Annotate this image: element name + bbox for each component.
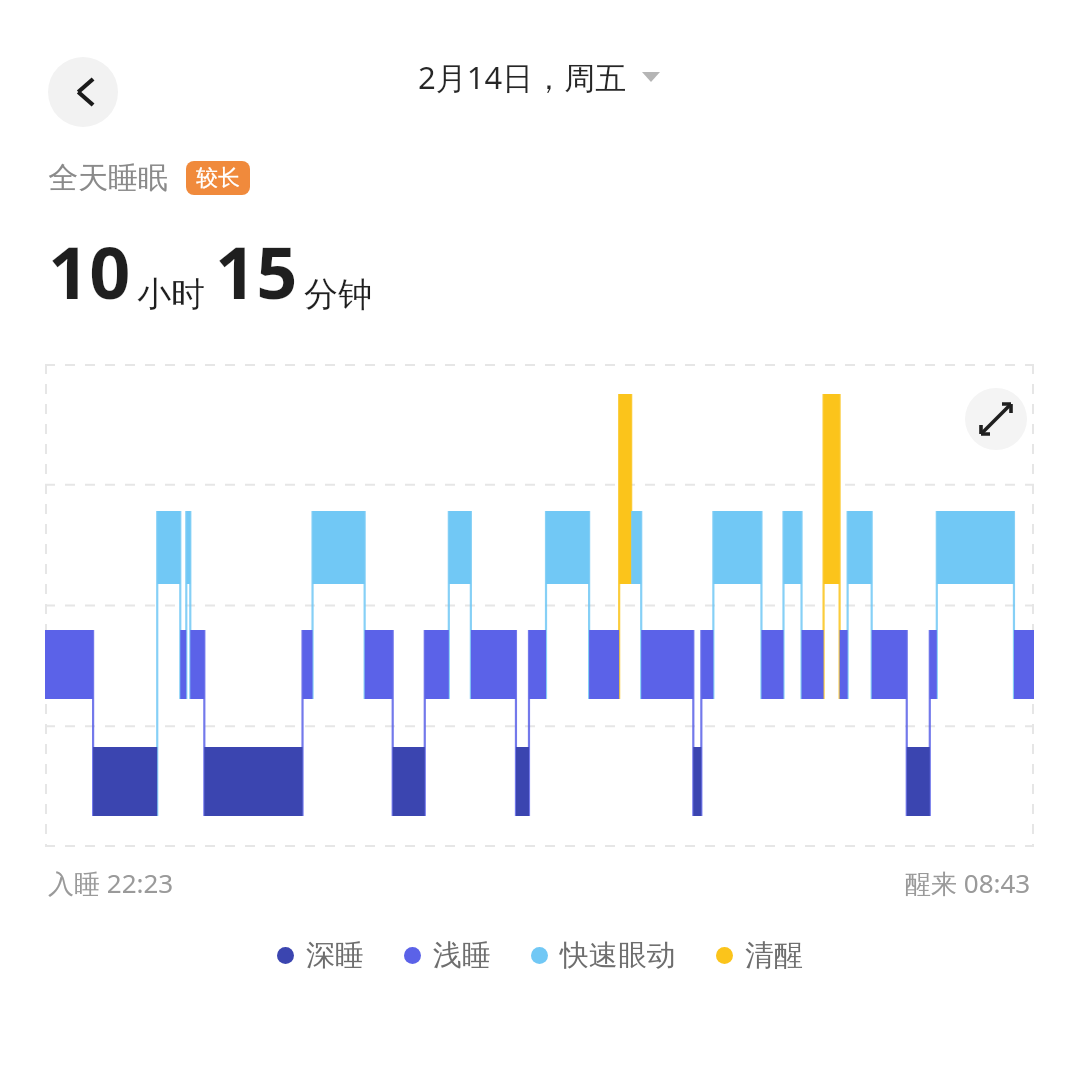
button[interactable]: 2月14日，周五 bbox=[418, 56, 661, 98]
button[interactable]: 清醒 bbox=[716, 937, 803, 974]
staticText: 浅睡 bbox=[433, 937, 491, 974]
button[interactable]: 较长 bbox=[186, 161, 250, 195]
staticText: 快速眼动 bbox=[560, 937, 676, 974]
staticText: 小时 bbox=[137, 273, 205, 316]
staticText: 15 bbox=[215, 222, 298, 320]
button[interactable]: 快速眼动 bbox=[531, 937, 676, 974]
staticText: 入睡 22:23 bbox=[48, 865, 174, 901]
button[interactable]: 深睡 bbox=[277, 937, 364, 974]
staticText: 全天睡眠 bbox=[48, 159, 168, 197]
staticText: 醒来 08:43 bbox=[905, 865, 1031, 901]
staticText: 清醒 bbox=[745, 937, 803, 974]
button[interactable]: 浅睡 bbox=[404, 937, 491, 974]
staticText: 分钟 bbox=[304, 273, 372, 316]
staticText: 2月14日，周五 bbox=[418, 56, 627, 98]
button[interactable]: Back bbox=[48, 57, 118, 127]
staticText: 较长 bbox=[196, 164, 240, 192]
staticText: 10 bbox=[48, 222, 131, 320]
staticText: 深睡 bbox=[306, 937, 364, 974]
button[interactable]: Expand chart bbox=[965, 388, 1027, 450]
